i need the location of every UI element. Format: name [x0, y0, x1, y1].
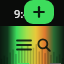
button[interactable]: Search [36, 33, 52, 57]
staticText: 9:41 [14, 6, 36, 21]
button[interactable]: Add activity [24, 0, 54, 24]
button[interactable]: Menu [12, 33, 36, 57]
